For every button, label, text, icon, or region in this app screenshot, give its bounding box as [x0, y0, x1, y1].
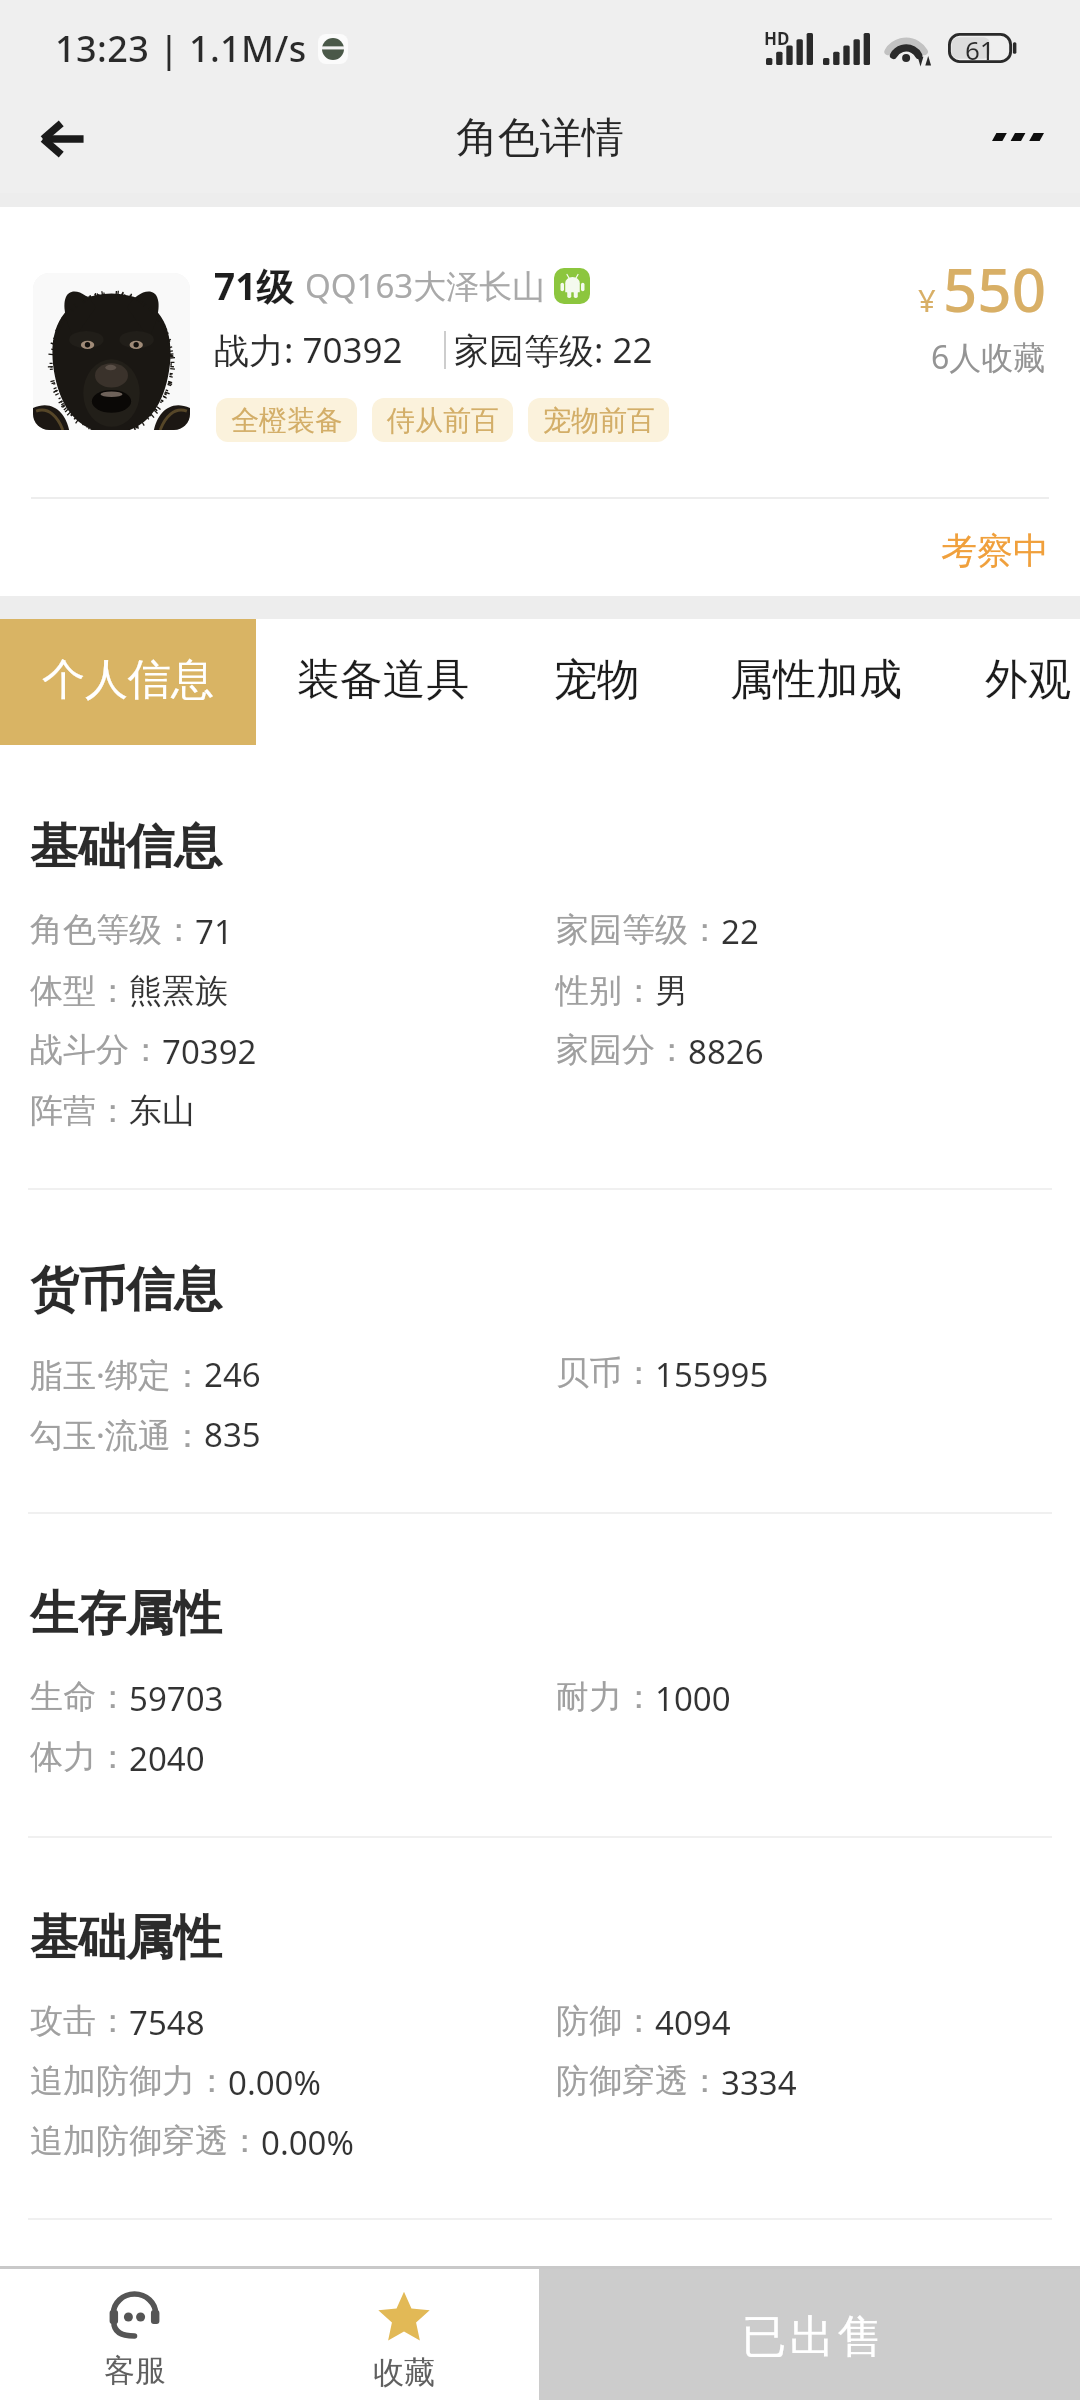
button[interactable]: Character avatar: [0, 207, 1080, 497]
staticText: 性别：: [556, 970, 655, 1012]
staticText: 宠物: [554, 653, 640, 707]
staticText: 70392: [162, 1029, 257, 1074]
staticText: 追加防御穿透：: [30, 2120, 261, 2162]
button[interactable]: 宠物前百: [528, 398, 669, 442]
staticText: 货币信息: [30, 1260, 222, 1320]
staticText: 550: [943, 248, 1046, 330]
staticText: 战力: 70392: [214, 326, 403, 374]
staticText: 61: [965, 32, 995, 62]
button[interactable]: Back: [14, 97, 110, 193]
staticText: 835: [204, 1412, 261, 1457]
staticText: 属性加成: [730, 653, 902, 707]
staticText: 战斗分：: [30, 1029, 162, 1071]
staticText: 角色详情: [456, 112, 624, 165]
staticText: 家园分：: [556, 1029, 688, 1071]
staticText: 体型：: [30, 970, 129, 1012]
staticText: 防御穿透：: [556, 2060, 721, 2102]
button[interactable]: 客服: [0, 2269, 269, 2400]
staticText: 追加防御力：: [30, 2060, 228, 2102]
staticText: 71: [195, 909, 233, 954]
staticText: 宠物前百: [543, 403, 655, 438]
staticText: 4094: [655, 2000, 731, 2045]
staticText: 贝币：: [556, 1352, 655, 1394]
button[interactable]: 宠物: [509, 619, 681, 745]
button[interactable]: 侍从前百: [372, 398, 513, 442]
staticText: 6人收藏: [931, 335, 1046, 379]
staticText: 收藏: [373, 2353, 435, 2392]
staticText: 生命：: [30, 1676, 129, 1718]
staticText: 家园等级：: [556, 909, 721, 951]
staticText: 外观: [985, 653, 1071, 707]
button[interactable]: 已出售: [539, 2269, 1080, 2400]
staticText: 家园等级: 22: [454, 326, 653, 374]
staticText: 侍从前百: [387, 403, 499, 438]
staticText: 22: [721, 909, 759, 954]
staticText: 客服: [104, 2351, 166, 2390]
staticText: 生存属性: [30, 1584, 222, 1644]
staticText: 2040: [129, 1736, 205, 1781]
staticText: 阵营：: [30, 1090, 129, 1132]
staticText: 防御：: [556, 2000, 655, 2042]
staticText: 59703: [129, 1676, 224, 1721]
staticText: QQ163大泽长山: [305, 263, 546, 308]
staticText: 攻击：: [30, 2000, 129, 2042]
staticText: 脂玉·绑定：: [30, 1352, 204, 1397]
staticText: 1000: [655, 1676, 731, 1721]
staticText: 耐力：: [556, 1676, 655, 1718]
button[interactable]: 属性加成: [681, 619, 950, 745]
staticText: ¥: [918, 279, 936, 321]
button[interactable]: More options: [978, 97, 1074, 193]
staticText: 东山: [129, 1090, 195, 1132]
button[interactable]: 外观: [950, 619, 1080, 745]
staticText: 246: [204, 1352, 261, 1397]
staticText: 熊罴族: [129, 970, 228, 1012]
staticText: 男: [655, 970, 688, 1012]
staticText: 基础信息: [30, 817, 222, 877]
staticText: 3334: [721, 2060, 797, 2105]
staticText: 已出售: [740, 2309, 884, 2366]
staticText: 155995: [655, 1352, 769, 1397]
staticText: 勾玉·流通：: [30, 1412, 204, 1457]
button[interactable]: 收藏: [269, 2269, 539, 2400]
staticText: 装备道具: [297, 653, 469, 707]
staticText: 基础属性: [30, 1908, 222, 1968]
staticText: 角色等级：: [30, 909, 195, 951]
staticText: 考察中: [941, 528, 1049, 573]
staticText: 0.00%: [228, 2060, 321, 2105]
button[interactable]: 装备道具: [256, 619, 509, 745]
staticText: HD: [764, 27, 790, 50]
staticText: 0.00%: [261, 2120, 354, 2165]
button[interactable]: 个人信息: [0, 619, 256, 745]
button[interactable]: 考察中: [0, 499, 1080, 596]
other: Character avatar: [33, 273, 190, 430]
staticText: 13:23 | 1.1M/s: [55, 24, 307, 73]
button[interactable]: 全橙装备: [216, 398, 357, 442]
staticText: 个人信息: [42, 653, 214, 707]
staticText: 7548: [129, 2000, 205, 2045]
staticText: 8826: [688, 1029, 764, 1074]
staticText: 71级: [214, 260, 294, 311]
staticText: 全橙装备: [231, 403, 343, 438]
staticText: 体力：: [30, 1736, 129, 1778]
